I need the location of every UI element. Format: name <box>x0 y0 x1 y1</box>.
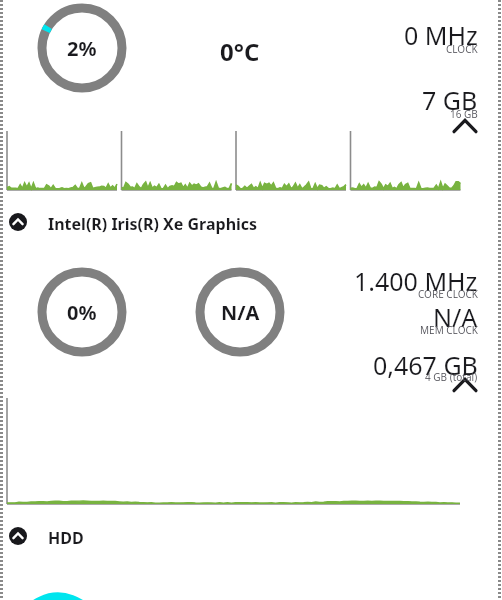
staticText: N/A <box>433 300 478 330</box>
staticText: 0,467 GB <box>373 348 478 378</box>
staticText: HDD <box>48 527 84 549</box>
staticText: 0 MHz <box>404 18 478 48</box>
button[interactable]: Collapse CPU <box>452 114 478 140</box>
staticText: 4 GB (total) <box>425 370 478 384</box>
staticText: 0°C <box>220 35 260 67</box>
staticText: 0% <box>67 299 97 326</box>
staticText: MEM CLOCK <box>420 323 478 337</box>
staticText: 1.400 MHz <box>354 264 478 294</box>
staticText: N/A <box>221 299 260 326</box>
staticText: 16 GB <box>450 107 478 121</box>
staticText: CLOCK <box>446 42 478 56</box>
button[interactable]: Collapse Intel(R) Iris(R) Xe Graphics <box>6 210 306 236</box>
staticText: Intel(R) Iris(R) Xe Graphics <box>48 213 258 235</box>
button[interactable]: Collapse GPU <box>452 373 478 399</box>
staticText: 7 GB <box>422 83 478 113</box>
button[interactable]: Collapse HDD <box>6 524 306 550</box>
staticText: CORE CLOCK <box>418 287 478 301</box>
staticText: 2% <box>67 35 97 62</box>
